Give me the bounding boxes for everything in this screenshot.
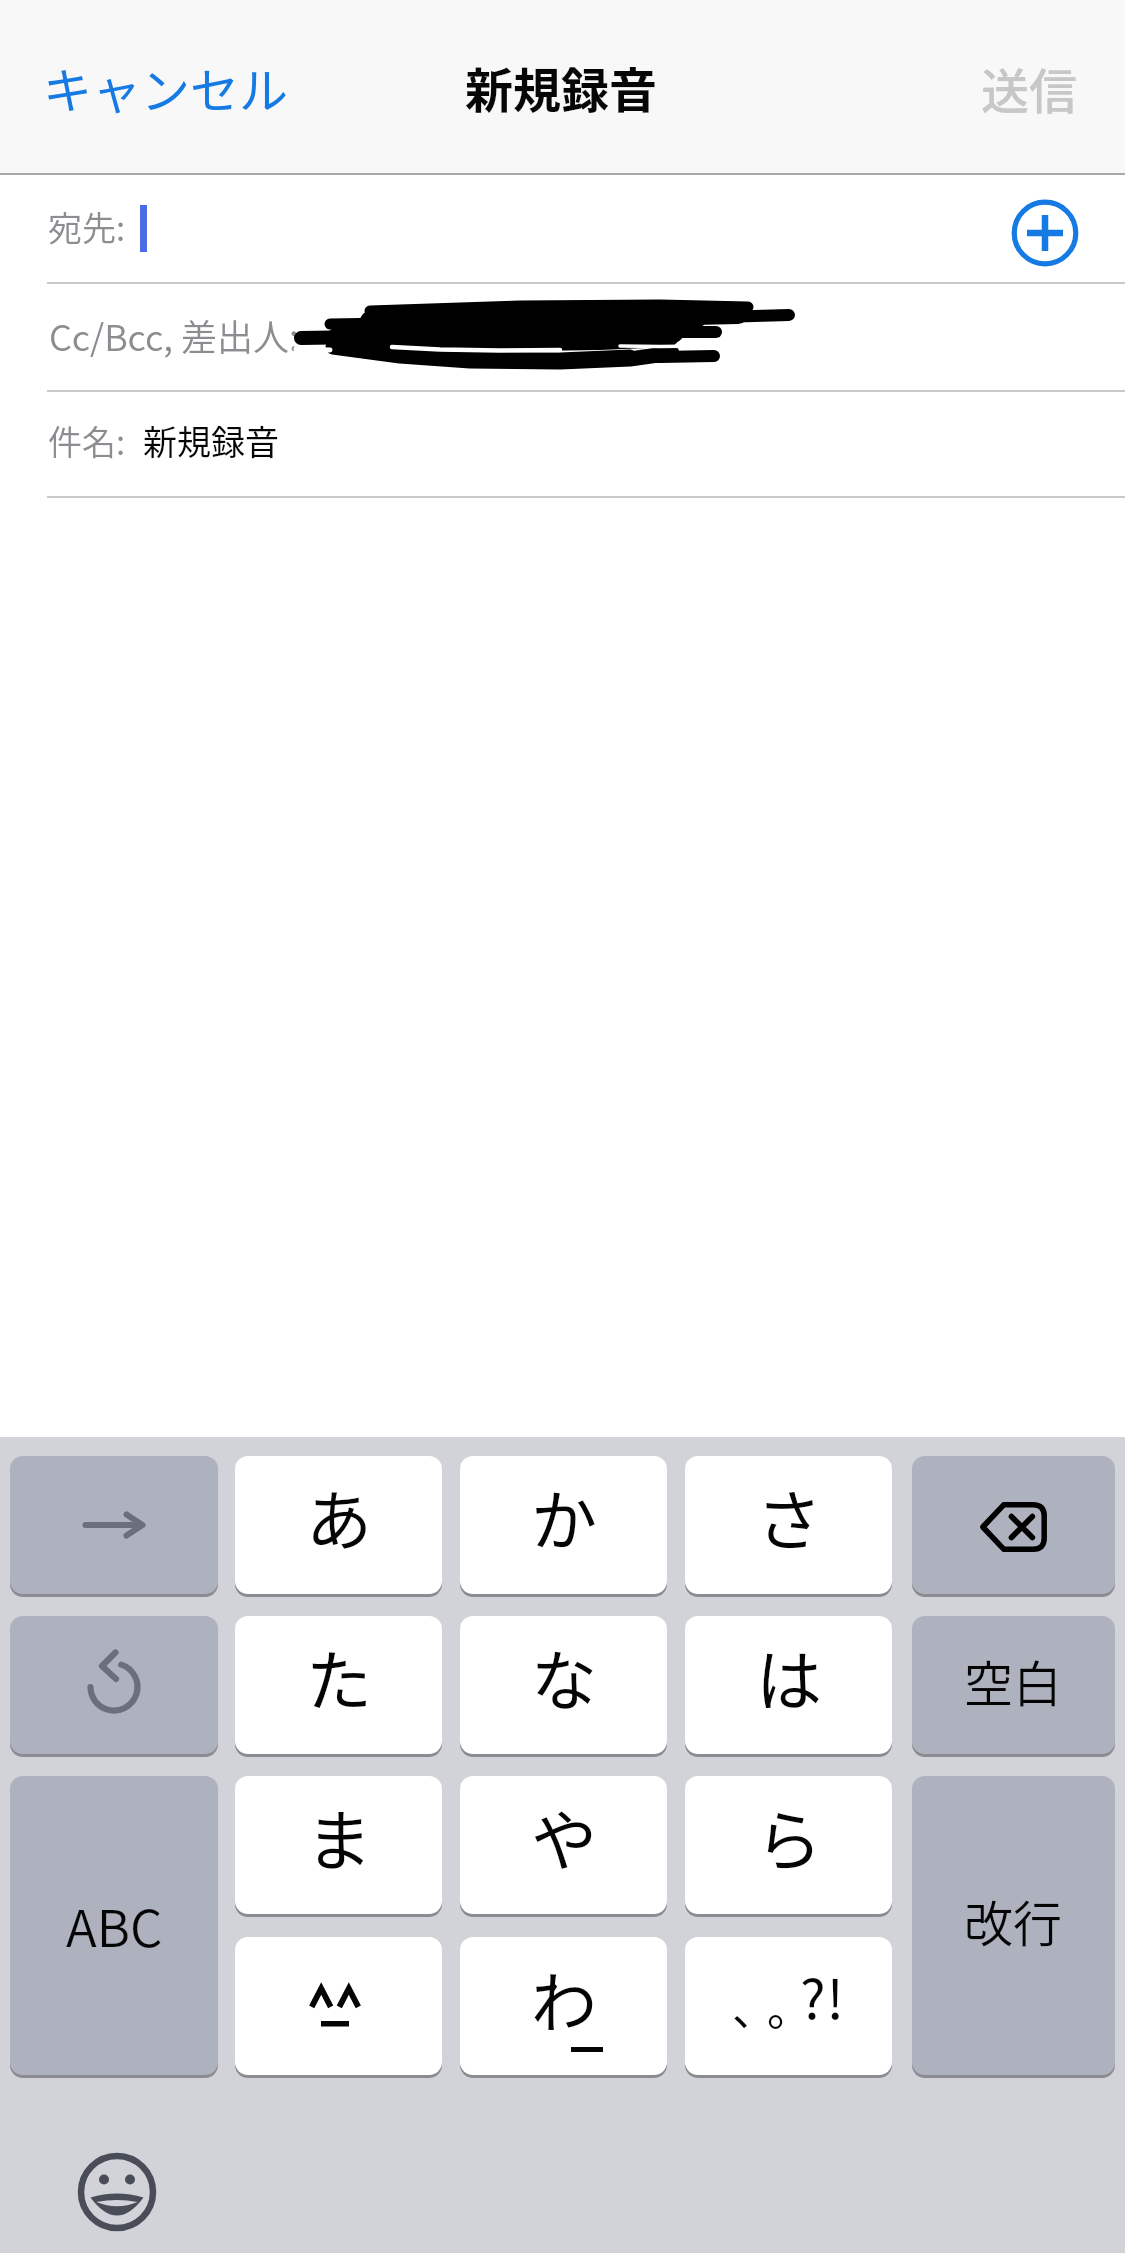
button[interactable]: Delete [912, 1456, 1115, 1594]
button[interactable]: ま [235, 1776, 442, 1914]
staticText: は [756, 1628, 822, 1724]
button[interactable]: や [460, 1776, 667, 1914]
button[interactable]: キャンセル [24, 28, 308, 147]
staticText: や [531, 1788, 597, 1884]
button[interactable]: は [685, 1616, 892, 1754]
staticText: さ [756, 1468, 822, 1564]
staticText: な [531, 1628, 597, 1724]
staticText: キャンセル [43, 52, 289, 123]
button[interactable]: 改行 [912, 1776, 1115, 2075]
staticText: ら [756, 1788, 822, 1884]
staticText: ま [306, 1788, 372, 1884]
button[interactable]: さ [685, 1456, 892, 1594]
button[interactable]: 送信 [962, 29, 1097, 147]
button[interactable]: Cc/Bcc, 差出人: [0, 283, 1125, 390]
button[interactable]: 、。 [685, 1937, 892, 2075]
staticText: 送信 [981, 53, 1078, 123]
button[interactable] [235, 1937, 442, 2075]
button[interactable]: 件名: [0, 391, 1125, 496]
staticText: ABC [66, 1888, 163, 1962]
button[interactable]: Undo [10, 1616, 218, 1754]
button[interactable]: 宛先: [0, 177, 1125, 282]
button[interactable]: ABC [10, 1776, 218, 2075]
staticText: 、。 [732, 1975, 802, 2039]
staticText: あ [306, 1468, 372, 1564]
staticText: 新規録音 [465, 52, 658, 122]
button[interactable]: た [235, 1616, 442, 1754]
staticText: た [306, 1628, 372, 1724]
staticText: 改行 [964, 1885, 1063, 1956]
staticText: 件名: [48, 416, 126, 465]
staticText: Cc/Bcc, 差出人: [49, 309, 299, 361]
staticText: わ [531, 1950, 597, 2046]
button[interactable]: Emoji keyboard [71, 2146, 163, 2238]
button[interactable]: Add recipient [1007, 192, 1083, 268]
button[interactable]: か [460, 1456, 667, 1594]
staticText: ?! [800, 1956, 846, 2034]
staticText: 空白 [964, 1645, 1063, 1716]
button[interactable]: ら [685, 1776, 892, 1914]
button[interactable]: Next [10, 1456, 218, 1594]
staticText: 宛先: [48, 202, 126, 251]
button[interactable]: あ [235, 1456, 442, 1594]
button[interactable]: 空白 [912, 1616, 1115, 1754]
staticText: 新規録音 [143, 416, 279, 465]
button[interactable]: な [460, 1616, 667, 1754]
staticText: か [531, 1468, 597, 1564]
button[interactable]: わ [460, 1937, 667, 2075]
